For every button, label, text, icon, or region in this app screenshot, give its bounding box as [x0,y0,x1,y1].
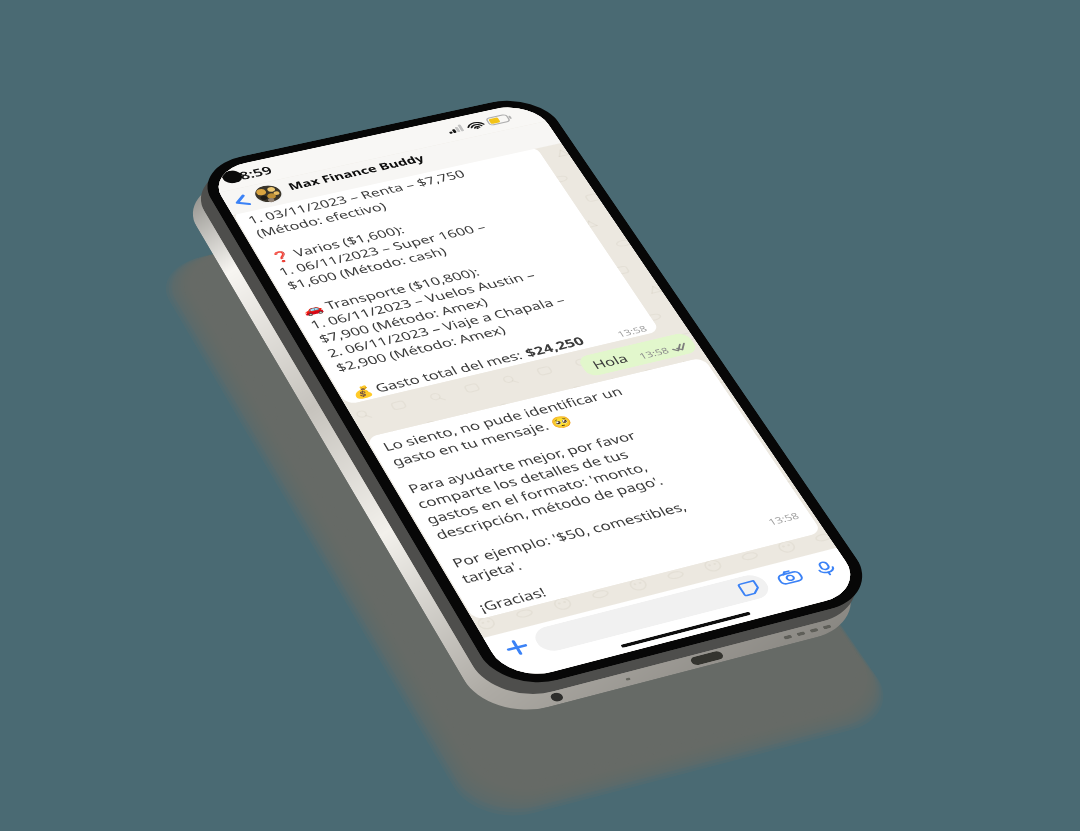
staticText: 1. 06/11/2023 – Vuelos Austin – [307,267,538,332]
button[interactable]: Max Finance Buddy [248,121,561,209]
staticText: (Método: efectivo) [252,198,389,240]
staticText: gasto en tu mensaje. 🥺 [388,411,576,469]
staticText: 1. 03/11/2023 – Renta – $7,750 [244,166,468,227]
staticText: Max Finance Buddy [285,152,428,193]
staticText: gastos en el formato: 'monto, [422,458,651,527]
button[interactable] [530,572,774,654]
staticText: 🚗 Transporte ($10,800): [298,264,482,318]
staticText: 13:58 [636,345,671,361]
staticText: $2,900 (Método: Amex) [332,322,509,375]
button[interactable]: Voice message [806,555,844,581]
button[interactable]: Back [219,186,262,215]
staticText: ¡Gracias! [475,583,549,615]
staticText: 1. 06/11/2023 – Super 1600 – [275,219,489,279]
button[interactable]: Hola [576,332,699,378]
staticText: 💰 Gasto total del mes: [348,346,530,401]
staticText: Por ejemplo: '$50, comestibles, [448,498,690,571]
button[interactable]: Lo siento, no pude identificar un [366,357,822,621]
staticText: descripción, método de pago'. [432,472,667,543]
button[interactable]: Attach [495,633,537,662]
staticText: $1,600 (Método: cash) [283,243,450,293]
staticText: comparte los detalles de tus [413,446,632,512]
staticText: Lo siento, no pude identificar un [379,383,626,454]
staticText: 13:58 [615,323,649,339]
staticText: Para ayudarte mejor, por favor [404,427,639,497]
staticText: 2. 06/11/2023 – Viaje a Chapala – [324,292,569,360]
staticText: ❓ Varios ($1,600): [267,222,408,265]
button[interactable]: Camera [770,564,808,590]
staticText: 13:58 [765,510,802,528]
staticText: Hola [588,350,632,372]
button[interactable]: 1. 03/11/2023 – Renta – $7,750 [232,146,660,405]
staticText: $24,250 [521,333,587,360]
staticText: tarjeta'. [458,556,525,587]
staticText: $7,900 (Método: Amex) [315,294,491,346]
staticText: 8:59 [236,163,275,182]
